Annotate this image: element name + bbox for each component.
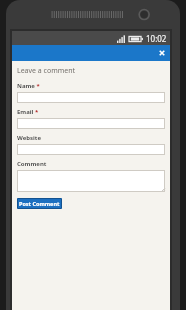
staticText: Leave a comment: [17, 66, 76, 76]
staticText: Website: [17, 134, 42, 142]
button[interactable]: [17, 92, 165, 103]
button[interactable]: [17, 118, 165, 129]
staticText: Post Comment: [19, 200, 60, 207]
button[interactable]: [17, 170, 165, 192]
staticText: Comment: [17, 160, 47, 168]
button[interactable]: Close: [157, 48, 167, 58]
staticText: Name *: [17, 82, 40, 90]
button[interactable]: [17, 144, 165, 155]
staticText: Email *: [17, 108, 39, 116]
button[interactable]: Post Comment: [17, 198, 62, 209]
staticText: 10:02: [146, 33, 167, 44]
